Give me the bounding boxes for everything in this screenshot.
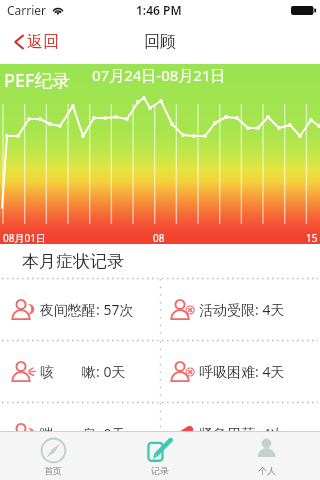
- button[interactable]: 夜间憋醒: 57次: [0, 279, 160, 340]
- button[interactable]: 首页: [0, 432, 106, 480]
- staticText: 咳 嗽: 0天: [40, 362, 126, 381]
- button[interactable]: 返回: [0, 27, 71, 57]
- staticText: 07月24日-08月21日: [92, 65, 226, 85]
- staticText: PEF纪录: [4, 68, 71, 93]
- staticText: 回顾: [144, 32, 176, 52]
- staticText: 08月01日: [3, 231, 46, 244]
- button[interactable]: 活动受限: 4天: [161, 279, 320, 340]
- staticText: 1:46 PM: [136, 2, 182, 18]
- other: 记录: [146, 437, 173, 464]
- staticText: Carrier: [7, 2, 47, 18]
- staticText: 呼吸困难: 4天: [199, 362, 285, 381]
- button[interactable]: 呼吸困难: 4天: [161, 341, 320, 402]
- staticText: 15: [306, 231, 318, 244]
- staticText: 08: [153, 231, 165, 244]
- staticText: 本月症状记录: [22, 251, 124, 272]
- staticText: 首页: [44, 465, 62, 476]
- button[interactable]: 紧急用药: 4次: [161, 403, 320, 464]
- staticText: 喘 息: 0天: [40, 424, 126, 443]
- staticText: 紧急用药: 4次: [199, 424, 285, 443]
- staticText: 记录: [151, 465, 169, 476]
- button[interactable]: 咳 嗽: 0天: [0, 341, 160, 402]
- other: 个人: [253, 437, 280, 464]
- staticText: 活动受限: 4天: [199, 300, 285, 319]
- staticText: 夜间憋醒: 57次: [40, 300, 134, 319]
- button[interactable]: 记录: [106, 432, 213, 480]
- button[interactable]: 个人: [213, 432, 320, 480]
- other: 首页: [40, 437, 67, 464]
- staticText: 返回: [27, 32, 59, 52]
- button[interactable]: 喘 息: 0天: [0, 403, 160, 464]
- staticText: 个人: [258, 465, 276, 476]
